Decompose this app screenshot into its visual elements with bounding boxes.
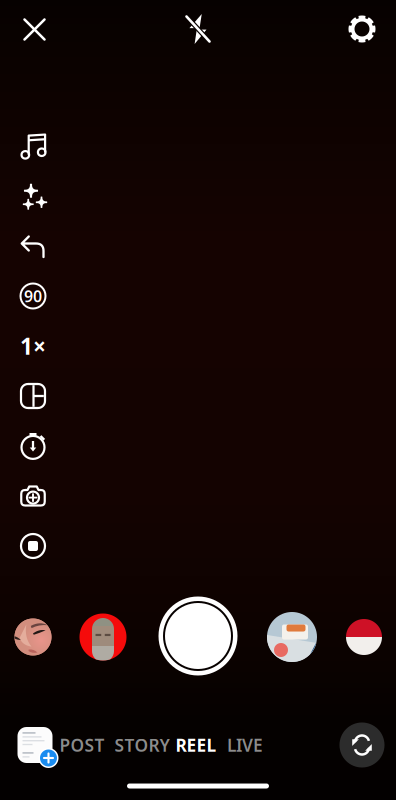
button[interactable]: Flash off	[173, 6, 223, 52]
button[interactable]: STORY	[108, 719, 175, 770]
staticText: POST	[59, 733, 104, 756]
button[interactable]: REEL	[169, 719, 222, 770]
button[interactable]: Close	[9, 6, 59, 52]
staticText: 1×	[20, 331, 46, 361]
button[interactable]: Effects	[11, 174, 55, 218]
button[interactable]: Gallery	[9, 719, 61, 771]
button[interactable]: Layout	[11, 374, 55, 418]
button[interactable]: Effect	[75, 607, 131, 667]
button[interactable]: Speed, 1x	[11, 324, 55, 368]
staticText: STORY	[114, 733, 169, 756]
button[interactable]: Record reel	[154, 592, 242, 680]
button[interactable]: Undo	[11, 224, 55, 268]
button[interactable]: Timer	[11, 424, 55, 468]
button[interactable]: POST	[53, 719, 110, 770]
button[interactable]: Effect	[342, 611, 386, 663]
button[interactable]: Effect	[11, 611, 55, 663]
button[interactable]: Flip camera	[335, 718, 389, 772]
button[interactable]: Audio	[11, 124, 55, 168]
button[interactable]: Add photo	[11, 474, 55, 518]
staticText: LIVE	[227, 733, 263, 756]
staticText: REEL	[175, 733, 216, 756]
button[interactable]: Align	[11, 524, 55, 568]
staticText: 90	[24, 285, 42, 307]
button[interactable]: LIVE	[221, 719, 269, 770]
button[interactable]: Reel length, 90 seconds	[11, 274, 55, 318]
button[interactable]: Camera settings	[337, 6, 387, 52]
button[interactable]: Effect	[264, 607, 320, 667]
